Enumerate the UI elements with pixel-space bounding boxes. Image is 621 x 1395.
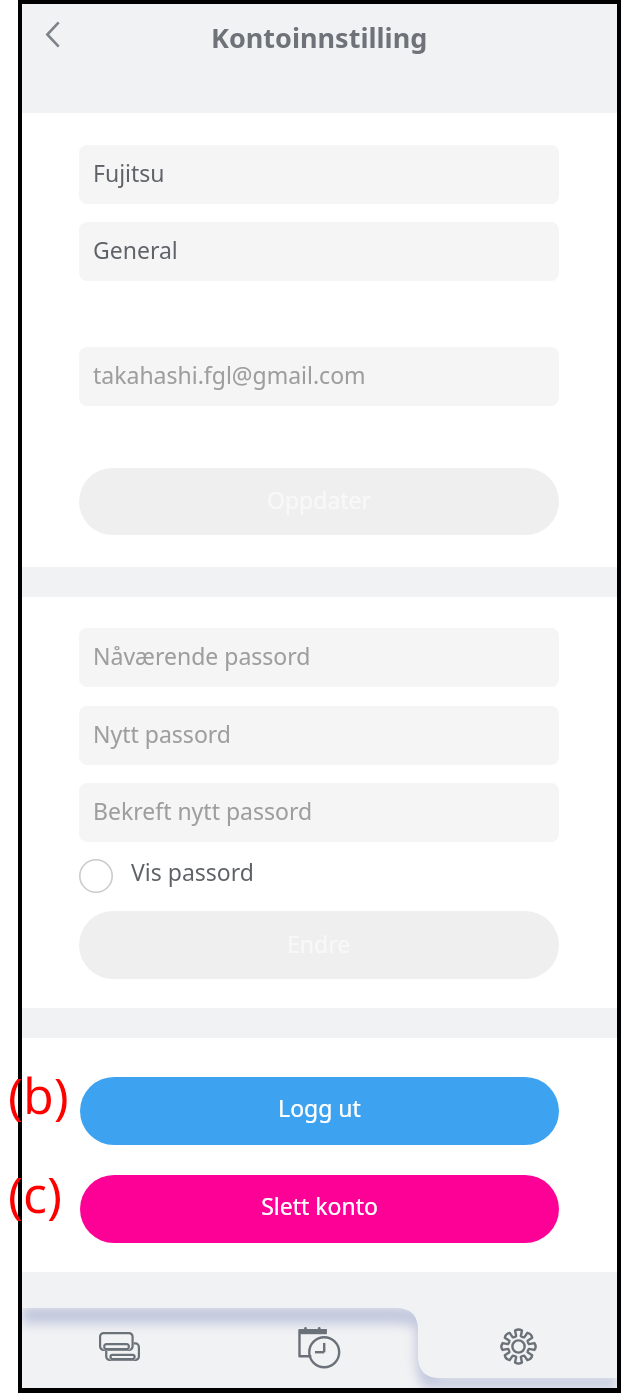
button[interactable]: Settings [419,1308,617,1388]
button[interactable]: Print queue [22,1308,221,1388]
staticText: (c) [8,1160,62,1228]
button[interactable]: Slett konto [80,1175,559,1243]
button[interactable]: Logg ut [80,1077,559,1145]
button[interactable]: Nytt passord [79,706,559,765]
staticText: Slett konto [261,1190,378,1221]
staticText: Nåværende passord [93,640,311,671]
staticText: Fujitsu [93,157,165,188]
staticText: Vis passord [131,856,254,887]
button[interactable]: General [79,222,559,281]
staticText: takahashi.fgl@gmail.com [93,359,366,390]
staticText: Bekreft nytt passord [93,795,313,826]
staticText: Endre [287,928,351,959]
staticText: Oppdater [267,484,372,515]
staticText: Kontoinnstilling [211,19,428,56]
button[interactable]: Back [25,3,81,68]
button[interactable]: Vis passord [79,856,559,896]
button[interactable]: Pending jobs [221,1308,419,1388]
button[interactable]: Bekreft nytt passord [79,783,559,842]
staticText: General [93,234,178,265]
staticText: Logg ut [278,1092,361,1123]
button[interactable]: takahashi.fgl@gmail.com [79,347,559,406]
button[interactable]: Nåværende passord [79,628,559,687]
staticText: (b) [8,1061,69,1129]
staticText: Nytt passord [93,718,231,749]
button[interactable]: Fujitsu [79,145,559,204]
